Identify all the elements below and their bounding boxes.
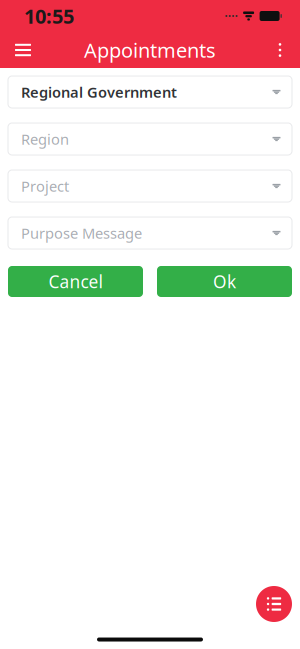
button[interactable]: Appointments list [256,586,292,622]
button[interactable]: Project [8,170,292,202]
staticText: Cancel [48,270,102,293]
button[interactable]: More options [264,32,296,68]
button[interactable]: Cancel [8,266,143,297]
staticText: 10:55 [24,3,74,29]
button[interactable]: Ok [157,266,292,297]
staticText: Purpose Message [21,223,142,243]
staticText: Project [21,176,69,196]
staticText: Ok [213,270,236,293]
button[interactable]: Purpose Message [8,217,292,249]
staticText: Appointments [84,37,216,63]
button[interactable]: Menu [5,32,41,68]
button[interactable]: Region [8,123,292,155]
staticText: Region [21,129,69,149]
button[interactable]: Regional Government [8,76,292,108]
staticText: Regional Government [21,82,177,102]
